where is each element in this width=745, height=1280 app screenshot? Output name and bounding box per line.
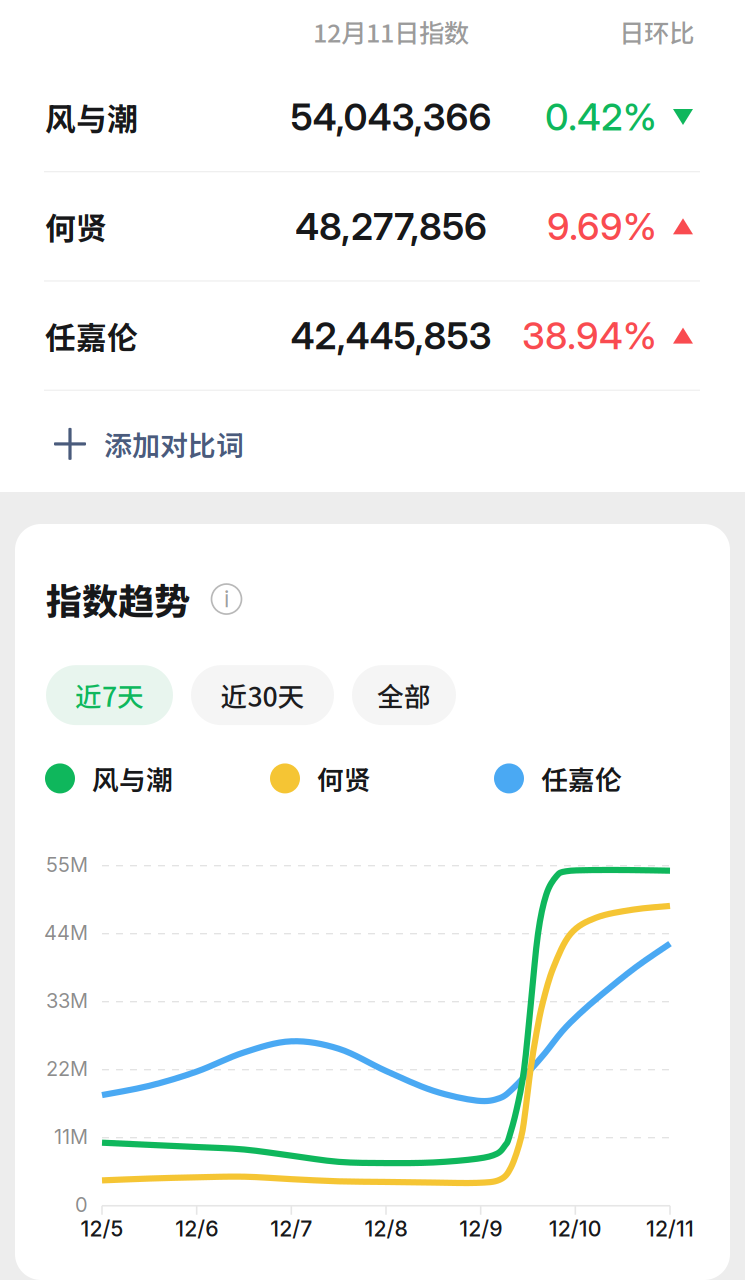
button[interactable]: 近30天: [191, 665, 334, 725]
button[interactable]: 何贤: [0, 172, 745, 280]
staticText: 12/6: [175, 1216, 218, 1242]
staticText: 任嘉伦: [45, 313, 138, 358]
staticText: 11M: [54, 1125, 88, 1149]
staticText: 日环比: [619, 13, 694, 50]
staticText: 55M: [46, 853, 88, 877]
staticText: 0: [75, 1193, 88, 1217]
staticText: 12/5: [80, 1216, 123, 1242]
staticText: 38.94%: [522, 313, 657, 358]
button[interactable]: 风与潮: [0, 63, 745, 171]
staticText: 12/11: [646, 1216, 694, 1242]
staticText: 添加对比词: [104, 424, 244, 464]
staticText: 42,445,853: [290, 313, 491, 358]
staticText: 44M: [44, 921, 88, 945]
staticText: 全部: [377, 676, 431, 714]
staticText: 风与潮: [92, 759, 173, 798]
staticText: 48,277,856: [295, 204, 487, 249]
button[interactable]: 添加对比词: [0, 391, 745, 497]
staticText: 何贤: [317, 759, 371, 798]
staticText: 何贤: [45, 204, 107, 248]
staticText: i: [224, 585, 229, 613]
button[interactable]: 近7天: [46, 665, 173, 725]
staticText: 近7天: [75, 676, 144, 714]
button[interactable]: 全部: [352, 665, 456, 725]
staticText: 22M: [46, 1057, 88, 1081]
staticText: 0.42%: [545, 94, 657, 140]
staticText: 风与潮: [45, 95, 138, 139]
staticText: 12月11日指数: [313, 13, 469, 50]
staticText: 33M: [46, 989, 88, 1013]
staticText: 12/8: [364, 1216, 407, 1242]
staticText: 12/7: [270, 1216, 312, 1242]
button[interactable]: 任嘉伦: [0, 282, 745, 390]
staticText: 近30天: [220, 676, 304, 714]
staticText: 12/10: [549, 1216, 602, 1242]
staticText: 12/9: [459, 1216, 502, 1242]
staticText: 指数趋势: [46, 573, 190, 625]
staticText: 54,043,366: [290, 94, 491, 140]
staticText: 9.69%: [547, 204, 657, 249]
staticText: 任嘉伦: [541, 759, 622, 798]
